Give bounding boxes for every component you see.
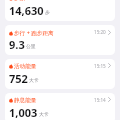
staticText: 静息能量 <box>14 97 37 104</box>
staticText: 活动能量 <box>14 63 37 70</box>
staticText: 15:15 <box>94 63 106 69</box>
staticText: 14,630 <box>9 3 44 18</box>
staticText: 大卡 <box>39 111 49 117</box>
staticText: 步 <box>45 9 50 15</box>
staticText: 15:20 <box>94 29 106 35</box>
button[interactable]: 步数 <box>5 0 115 21</box>
staticText: 大卡 <box>29 77 39 83</box>
button[interactable]: 活动能量 <box>5 59 115 89</box>
staticText: 公里 <box>26 43 36 49</box>
button[interactable]: 静息能量 <box>5 93 115 120</box>
staticText: 9.3 <box>9 37 25 52</box>
staticText: 1,003 <box>9 105 38 120</box>
staticText: 15:14 <box>94 97 106 103</box>
staticText: 752 <box>9 71 28 86</box>
button[interactable]: 步行 + 跑步距离 <box>5 25 115 55</box>
staticText: 步行 + 跑步距离 <box>14 29 54 37</box>
staticText: 步数 <box>14 0 26 2</box>
